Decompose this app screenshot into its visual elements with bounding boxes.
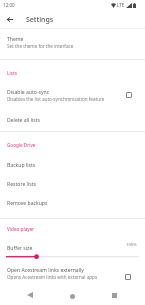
button[interactable]: Back [20,285,40,305]
staticText: Delete all lists [7,117,40,124]
button[interactable]: Backup lists [0,159,145,178]
staticText: 100% [126,242,137,248]
button[interactable]: Buffer size [0,242,145,262]
staticText: Disables the list auto-synchronization f… [7,96,105,102]
button[interactable]: Recents [104,285,124,305]
button[interactable]: Delete all lists [0,114,145,133]
staticText: LTE [117,2,125,8]
staticText: Backup lists [7,162,36,169]
button[interactable]: Back [3,12,17,26]
staticText: Set the theme for the interface [7,43,74,49]
staticText: 12:00 [3,2,15,8]
staticText: Google Drive [7,142,36,148]
button[interactable]: Theme [0,33,145,52]
staticText: Opens Acestream links with external apps [7,274,98,280]
button[interactable]: Remove backups [0,197,145,216]
button[interactable]: Disable auto-sync [0,86,145,105]
staticText: Theme [7,36,24,43]
staticText: Video player [7,226,35,232]
staticText: Restore lists [7,181,36,188]
staticText: Open Acestream links externally [7,267,84,274]
staticText: Lists [7,70,17,76]
staticText: Disable auto-sync [7,89,50,96]
button[interactable]: Open Acestream links externally [0,264,145,283]
staticText: Remove backups [7,200,48,207]
staticText: Buffer size [7,245,33,252]
button[interactable]: Restore lists [0,178,145,197]
staticText: Settings [26,15,54,25]
button[interactable]: Home [62,286,82,305]
